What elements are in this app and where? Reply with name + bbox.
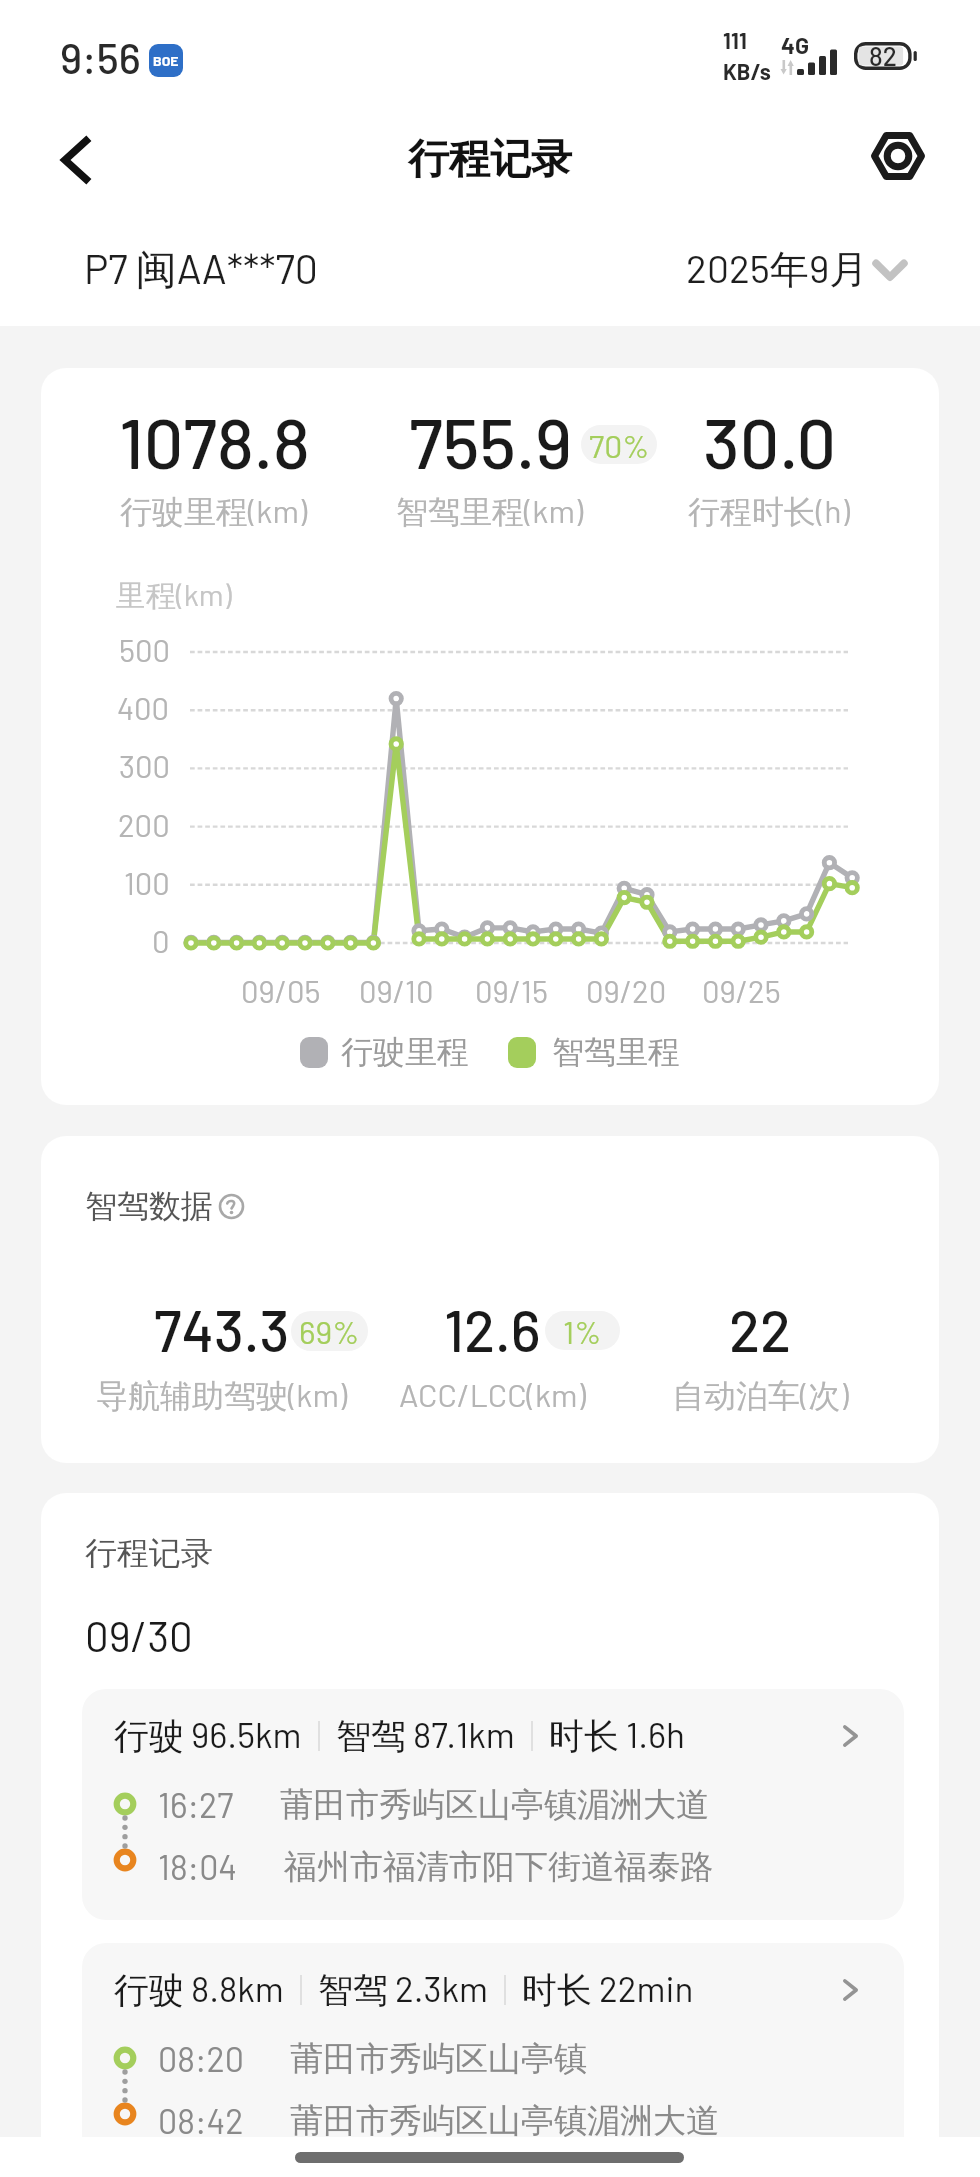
- staticText: 08:20: [158, 2038, 244, 2079]
- staticText: 莆田市秀屿区山亭镇: [290, 2038, 587, 2080]
- staticText: 行程记录: [408, 134, 572, 186]
- staticText: 500: [119, 631, 170, 668]
- staticText: 智驾 2.3km: [318, 1967, 488, 2012]
- staticText: 743.3: [154, 1295, 290, 1363]
- staticText: 时长 1.6h: [549, 1713, 685, 1758]
- button[interactable]: [82, 1689, 904, 1920]
- staticText: 82: [869, 40, 897, 71]
- staticText: 300: [119, 747, 170, 784]
- staticText: KB/s: [723, 58, 771, 84]
- staticText: 智驾数据: [85, 1186, 213, 1226]
- staticText: 111: [723, 27, 747, 53]
- button[interactable]: [82, 1943, 904, 2174]
- staticText: P7 闽AA***70: [84, 243, 319, 296]
- staticText: 里程(km): [116, 576, 232, 615]
- staticText: 2025年9月: [686, 244, 869, 295]
- staticText: 导航辅助驾驶(km): [96, 1375, 348, 1417]
- staticText: 4G: [781, 31, 809, 59]
- staticText: 16:27: [158, 1784, 234, 1825]
- staticText: 400: [117, 689, 170, 726]
- staticText: BOE: [153, 52, 179, 69]
- button[interactable]: Open trip: [828, 1968, 872, 2012]
- staticText: 1078.8: [119, 399, 310, 483]
- button[interactable]: Settings: [858, 116, 938, 196]
- staticText: 福州市福清市阳下街道福泰路: [284, 1846, 713, 1888]
- staticText: 行程时长(h): [688, 491, 850, 533]
- staticText: 09/30: [85, 1610, 193, 1660]
- staticText: 智驾里程(km): [396, 491, 584, 533]
- button[interactable]: 2025年9月: [686, 244, 907, 295]
- staticText: 行驶 8.8km: [114, 1967, 284, 2012]
- staticText: 智驾 87.1km: [336, 1713, 515, 1758]
- staticText: 0: [152, 922, 170, 959]
- staticText: 行驶里程(km): [120, 491, 308, 533]
- staticText: 69%: [299, 1312, 360, 1350]
- staticText: 755.9: [409, 399, 572, 483]
- button[interactable]: Open trip: [828, 1714, 872, 1758]
- staticText: ACC/LCC(km): [399, 1375, 586, 1413]
- staticText: 09/25: [702, 972, 781, 1009]
- staticText: 200: [118, 806, 170, 843]
- staticText: 09/20: [586, 972, 667, 1009]
- staticText: 时长 22min: [522, 1967, 694, 2012]
- button[interactable]: Back: [36, 120, 116, 200]
- staticText: 18:04: [158, 1846, 238, 1887]
- staticText: 100: [124, 864, 170, 901]
- staticText: 莆田市秀屿区山亭镇湄洲大道: [280, 1784, 709, 1826]
- staticText: 08:42: [158, 2100, 244, 2141]
- staticText: 行驶 96.5km: [114, 1713, 302, 1758]
- staticText: 莆田市秀屿区山亭镇湄洲大道: [290, 2100, 719, 2142]
- staticText: 30.0: [703, 399, 836, 483]
- staticText: 1%: [563, 1312, 602, 1350]
- staticText: 智驾里程: [552, 1032, 680, 1072]
- staticText: 09/15: [475, 972, 548, 1009]
- staticText: 行程记录: [85, 1533, 213, 1573]
- staticText: 行驶里程: [341, 1032, 469, 1072]
- staticText: 12.6: [444, 1295, 541, 1363]
- staticText: 自动泊车(次): [672, 1375, 849, 1417]
- staticText: 09/05: [241, 972, 321, 1009]
- staticText: 70%: [589, 426, 650, 464]
- staticText: 09/10: [359, 972, 434, 1009]
- staticText: 9:56: [60, 32, 141, 82]
- staticText: 22: [729, 1295, 792, 1363]
